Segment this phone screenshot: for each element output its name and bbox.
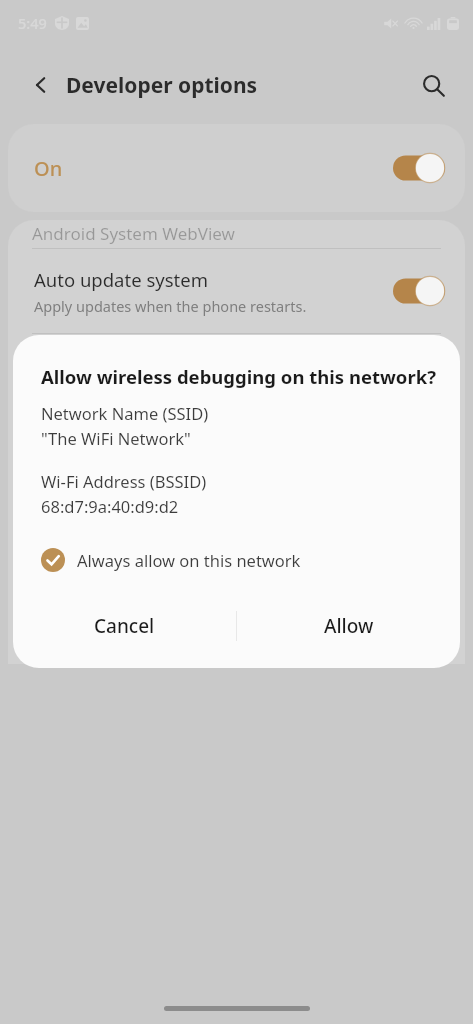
button[interactable]: Always allow on this network bbox=[41, 543, 460, 577]
staticText: Network Name (SSID) bbox=[41, 402, 209, 424]
staticText: Wireless debugging bbox=[34, 437, 207, 462]
button[interactable]: 3GPP AT commands bbox=[8, 334, 465, 418]
staticText: 3GPP AT commands bbox=[34, 352, 208, 377]
staticText: Cancel bbox=[94, 613, 155, 639]
staticText: "The WiFi Network" bbox=[41, 427, 191, 449]
button[interactable]: Cancel bbox=[13, 599, 236, 653]
staticText: Apply updates when the phone restarts. bbox=[34, 296, 307, 316]
button[interactable]: Allow bbox=[237, 599, 460, 653]
staticText: Allow wireless debugging on this network… bbox=[41, 364, 436, 389]
button[interactable]: Auto update system bbox=[8, 249, 465, 333]
staticText: Developer options bbox=[66, 71, 258, 100]
button[interactable]: Wireless debugging bbox=[8, 419, 465, 503]
staticText: Wi-Fi Address (BSSID) bbox=[41, 470, 207, 492]
staticText: Always allow on this network bbox=[77, 549, 301, 571]
staticText: Turn 3GPP AT commands on or off. bbox=[34, 381, 272, 401]
button[interactable]: Back bbox=[22, 66, 60, 104]
staticText: Disable automatic revocation of adb auth… bbox=[34, 551, 355, 655]
staticText: 5:49 bbox=[18, 13, 47, 33]
staticText: Allow bbox=[324, 613, 374, 639]
staticText: On bbox=[34, 155, 63, 182]
button[interactable]: Disable adb authorization timeout bbox=[8, 504, 465, 664]
button[interactable]: Android System WebView bbox=[8, 226, 465, 248]
staticText: 68:d7:9a:40:d9:d2 bbox=[41, 495, 179, 517]
staticText: Debug mode when Wi-Fi is connected bbox=[34, 466, 291, 486]
staticText: Auto update system bbox=[34, 267, 208, 292]
staticText: Android System WebView bbox=[32, 222, 235, 244]
button[interactable]: On bbox=[8, 124, 465, 212]
button[interactable]: Search bbox=[413, 65, 453, 105]
